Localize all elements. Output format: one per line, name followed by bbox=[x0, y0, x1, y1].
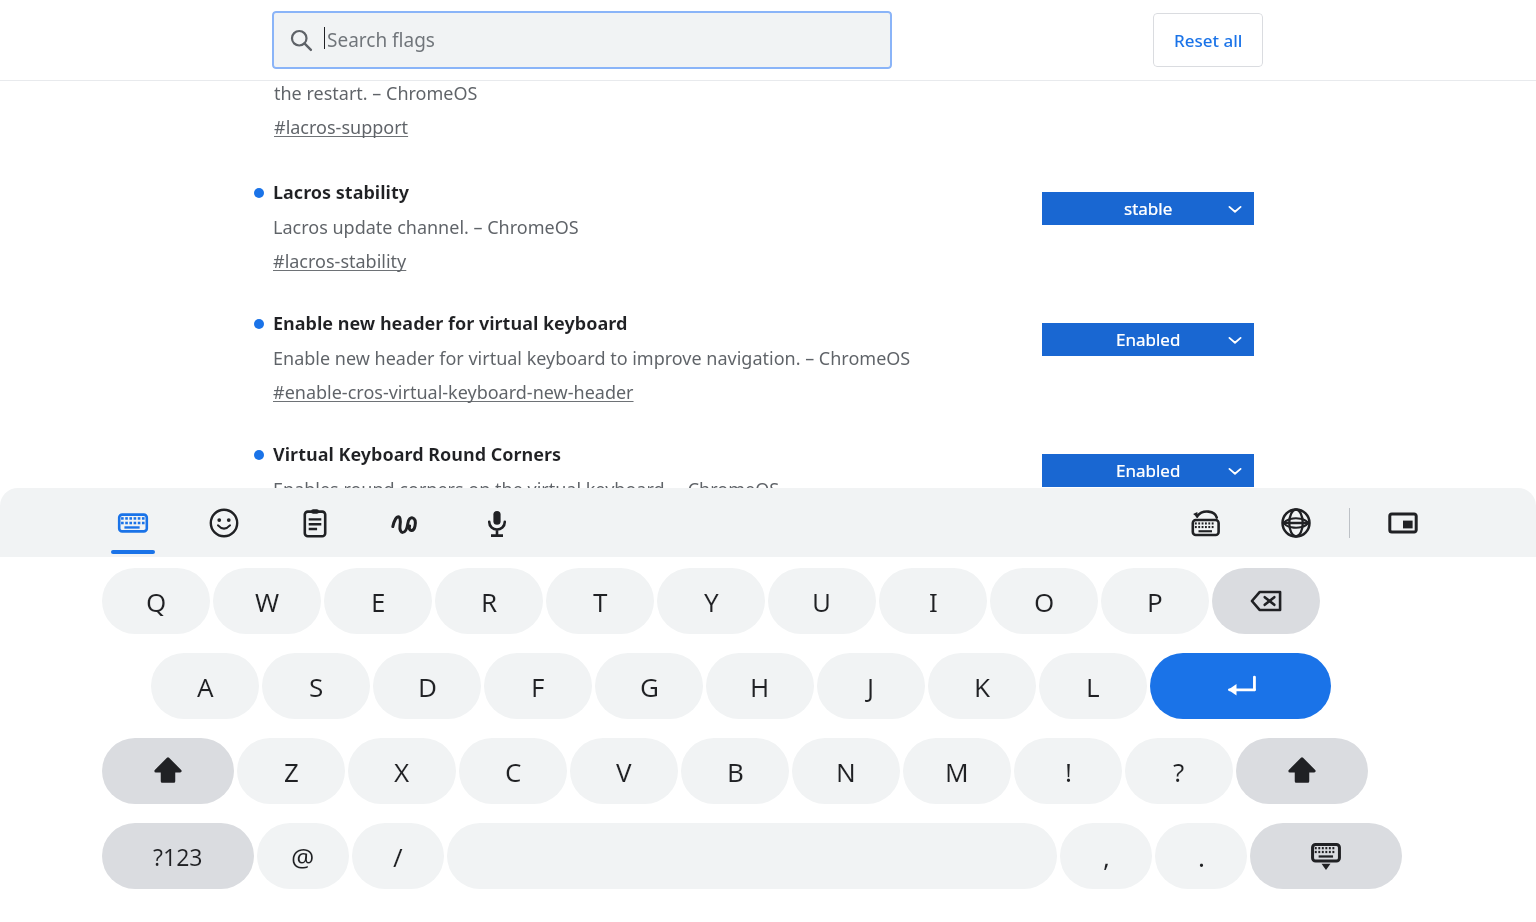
staticText: F bbox=[531, 669, 545, 704]
button[interactable]: Reset all bbox=[1153, 13, 1263, 67]
button[interactable]: X bbox=[348, 738, 456, 804]
staticText: Y bbox=[704, 584, 719, 619]
button[interactable]: Hide keyboard bbox=[1250, 823, 1402, 889]
button[interactable]: Handwriting bbox=[379, 488, 433, 557]
staticText: T bbox=[593, 584, 608, 619]
button[interactable]: P bbox=[1101, 568, 1209, 634]
button[interactable]: . bbox=[1155, 823, 1247, 889]
button[interactable]: D bbox=[373, 653, 481, 719]
button[interactable]: #enable-cros-virtual-keyboard-new-header bbox=[273, 380, 634, 405]
button[interactable]: Search flags bbox=[272, 11, 892, 69]
button[interactable]: J bbox=[817, 653, 925, 719]
staticText: , bbox=[1103, 839, 1110, 874]
button[interactable]: B bbox=[681, 738, 789, 804]
button[interactable]: N bbox=[792, 738, 900, 804]
staticText: D bbox=[418, 669, 437, 704]
staticText: Enabled bbox=[1116, 459, 1181, 482]
staticText: Reset all bbox=[1174, 29, 1243, 52]
button[interactable]: Voice input bbox=[470, 488, 524, 557]
staticText: Enable new header for virtual keyboard t… bbox=[273, 346, 911, 371]
button[interactable]: S bbox=[262, 653, 370, 719]
staticText: H bbox=[750, 669, 770, 704]
button[interactable]: Clipboard bbox=[288, 488, 342, 557]
button[interactable]: Keyboard layout bbox=[106, 488, 160, 557]
button[interactable]: #lacros-stability bbox=[273, 249, 407, 274]
staticText: Enable new header for virtual keyboard bbox=[273, 311, 628, 336]
staticText: U bbox=[812, 584, 832, 619]
button[interactable]: I bbox=[879, 568, 987, 634]
staticText: E bbox=[371, 584, 386, 619]
button[interactable]: / bbox=[352, 823, 444, 889]
staticText: ?123 bbox=[153, 841, 203, 872]
button[interactable]: ?123 bbox=[102, 823, 254, 889]
button[interactable]: Undo keyboard bbox=[1179, 488, 1233, 557]
button[interactable]: Shift bbox=[102, 738, 234, 804]
button[interactable]: A bbox=[151, 653, 259, 719]
button[interactable]: Emoji bbox=[197, 488, 251, 557]
button[interactable]: W bbox=[213, 568, 321, 634]
staticText: P bbox=[1147, 584, 1163, 619]
button[interactable]: Y bbox=[657, 568, 765, 634]
staticText: V bbox=[616, 754, 632, 789]
staticText: K bbox=[974, 669, 991, 704]
staticText: W bbox=[255, 584, 280, 619]
button[interactable]: #lacros-support bbox=[274, 115, 409, 140]
staticText: the restart. – ChromeOS bbox=[274, 81, 478, 106]
staticText: Z bbox=[284, 754, 299, 789]
staticText: @ bbox=[291, 839, 315, 874]
button[interactable]: Backspace bbox=[1212, 568, 1320, 634]
staticText: X bbox=[394, 754, 410, 789]
staticText: A bbox=[197, 669, 214, 704]
staticText: L bbox=[1086, 669, 1100, 704]
button[interactable]: Enabled bbox=[1042, 454, 1254, 487]
staticText: S bbox=[309, 669, 324, 704]
button[interactable]: @ bbox=[257, 823, 349, 889]
staticText: . bbox=[1198, 839, 1205, 874]
staticText: J bbox=[867, 669, 875, 704]
button[interactable]: H bbox=[706, 653, 814, 719]
button[interactable]: Floating keyboard bbox=[1376, 488, 1430, 557]
button[interactable]: Q bbox=[102, 568, 210, 634]
staticText: stable bbox=[1124, 197, 1173, 220]
staticText: ! bbox=[1065, 754, 1072, 789]
button[interactable]: G bbox=[595, 653, 703, 719]
staticText: G bbox=[640, 669, 659, 704]
button[interactable]: M bbox=[903, 738, 1011, 804]
button[interactable]: U bbox=[768, 568, 876, 634]
staticText: Virtual Keyboard Round Corners bbox=[273, 442, 562, 467]
staticText: Enabled bbox=[1116, 328, 1181, 351]
button[interactable]: Enabled bbox=[1042, 323, 1254, 356]
staticText: / bbox=[393, 839, 403, 874]
button[interactable]: Shift bbox=[1236, 738, 1368, 804]
button[interactable]: stable bbox=[1042, 192, 1254, 225]
staticText: M bbox=[945, 754, 969, 789]
button[interactable]: , bbox=[1060, 823, 1152, 889]
button[interactable]: ! bbox=[1014, 738, 1122, 804]
staticText: ? bbox=[1173, 754, 1185, 789]
button[interactable]: C bbox=[459, 738, 567, 804]
staticText: Search flags bbox=[327, 27, 435, 53]
button[interactable]: T bbox=[546, 568, 654, 634]
staticText: Lacros update channel. – ChromeOS bbox=[273, 215, 579, 240]
staticText: Enables round corners on the virtual key… bbox=[273, 477, 780, 502]
staticText: B bbox=[727, 754, 744, 789]
button[interactable]: F bbox=[484, 653, 592, 719]
button[interactable]: V bbox=[570, 738, 678, 804]
staticText: Q bbox=[146, 584, 167, 619]
staticText: R bbox=[481, 584, 498, 619]
button[interactable]: ? bbox=[1125, 738, 1233, 804]
staticText: C bbox=[505, 754, 522, 789]
staticText: O bbox=[1034, 584, 1055, 619]
staticText: I bbox=[929, 584, 938, 619]
button[interactable]: L bbox=[1039, 653, 1147, 719]
button[interactable]: E bbox=[324, 568, 432, 634]
button[interactable]: Enter bbox=[1150, 653, 1331, 719]
button[interactable]: Change language bbox=[1269, 488, 1323, 557]
button[interactable]: Z bbox=[237, 738, 345, 804]
button[interactable]: K bbox=[928, 653, 1036, 719]
staticText: Lacros stability bbox=[273, 180, 410, 205]
button[interactable]: O bbox=[990, 568, 1098, 634]
staticText: N bbox=[836, 754, 856, 789]
button[interactable]: R bbox=[435, 568, 543, 634]
